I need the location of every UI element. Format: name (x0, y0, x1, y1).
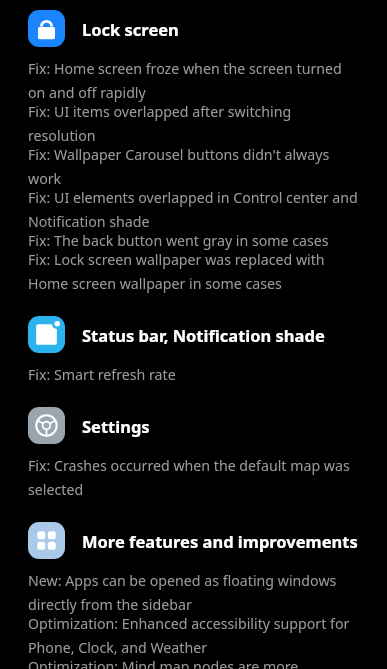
staticText: Status bar, Notification shade (82, 324, 325, 346)
other: Status bar and notification shade (28, 316, 65, 353)
staticText: Fix: Crashes occurred when the default m… (28, 456, 361, 499)
button[interactable]: Status bar and notification shade (0, 316, 387, 353)
staticText: Fix: The back button went gray in some c… (28, 231, 329, 250)
staticText: Settings (82, 415, 150, 437)
staticText: More features and improvements (82, 530, 358, 552)
button[interactable]: Settings (0, 407, 387, 444)
staticText: Fix: Wallpaper Carousel buttons didn't a… (28, 145, 361, 188)
button[interactable]: More features and improvements (0, 522, 387, 559)
staticText: Fix: Home screen froze when the screen t… (28, 59, 361, 102)
staticText: Optimization: Mind map nodes are more co… (28, 657, 361, 669)
button[interactable]: Lock screen (0, 10, 387, 47)
other: Settings (28, 407, 65, 444)
staticText: New: Apps can be opened as floating wind… (28, 571, 361, 614)
other: More features and improvements (28, 522, 65, 559)
staticText: Fix: Smart refresh rate (28, 365, 176, 384)
staticText: Fix: UI elements overlapped in Control c… (28, 188, 361, 231)
staticText: Fix: Lock screen wallpaper was replaced … (28, 250, 361, 293)
staticText: Lock screen (82, 18, 179, 40)
staticText: Optimization: Enhanced accessibility sup… (28, 614, 361, 657)
staticText: Fix: UI items overlapped after switching… (28, 102, 361, 145)
other: Lock screen (28, 10, 65, 47)
